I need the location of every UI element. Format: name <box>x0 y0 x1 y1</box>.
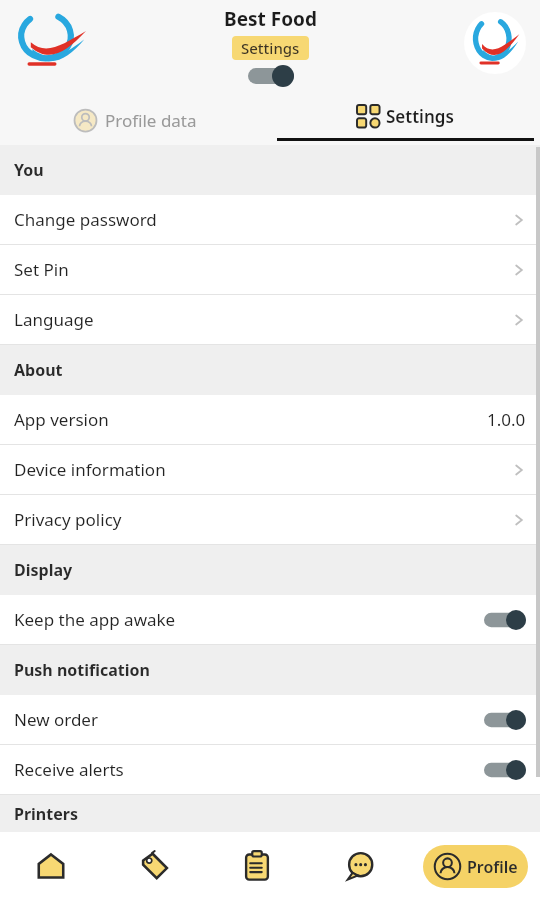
staticText: Privacy policy <box>14 508 122 531</box>
button[interactable]: Profile <box>423 845 528 888</box>
staticText: About <box>14 359 63 381</box>
button[interactable]: Privacy policy <box>0 495 540 545</box>
button[interactable]: Messages <box>308 832 411 900</box>
staticText: Display <box>14 559 73 581</box>
button[interactable]: Orders <box>205 832 308 900</box>
button[interactable]: Settings <box>232 36 309 60</box>
button[interactable]: Toggle settings <box>484 710 526 730</box>
staticText: 1.0.0 <box>487 408 526 431</box>
staticText: Device information <box>14 458 166 481</box>
staticText: Language <box>14 308 94 331</box>
button[interactable]: Home <box>0 832 102 900</box>
staticText: Profile data <box>105 109 197 132</box>
staticText: Receive alerts <box>14 758 124 781</box>
button[interactable]: Toggle settings <box>248 65 294 87</box>
staticText: Change password <box>14 208 157 231</box>
button[interactable]: Change password <box>0 195 540 245</box>
button[interactable]: Offers <box>102 832 205 900</box>
staticText: You <box>14 159 44 181</box>
staticText: New order <box>14 708 98 731</box>
button[interactable]: Keep the app awake <box>0 595 540 645</box>
staticText: Best Food <box>224 6 317 32</box>
button[interactable]: Language <box>0 295 540 345</box>
button[interactable]: Profile data <box>0 95 270 145</box>
staticText: Settings <box>241 38 300 58</box>
staticText: Push notification <box>14 659 150 681</box>
button[interactable]: Toggle settings <box>484 760 526 780</box>
staticText: Settings <box>386 105 454 128</box>
button[interactable]: Account logo <box>464 12 526 74</box>
button[interactable]: New order <box>0 695 540 745</box>
button[interactable]: Toggle settings <box>484 610 526 630</box>
staticText: Set Pin <box>14 258 69 281</box>
button[interactable]: Device information <box>0 445 540 495</box>
button[interactable]: Receive alerts <box>0 745 540 795</box>
staticText: Keep the app awake <box>14 608 176 631</box>
button[interactable]: Settings <box>270 95 540 145</box>
staticText: App version <box>14 408 109 431</box>
staticText: Printers <box>14 803 78 825</box>
staticText: Profile <box>467 856 518 878</box>
button[interactable]: Best Food logo <box>10 10 90 72</box>
button[interactable]: Set Pin <box>0 245 540 295</box>
button[interactable]: App version <box>0 395 540 445</box>
